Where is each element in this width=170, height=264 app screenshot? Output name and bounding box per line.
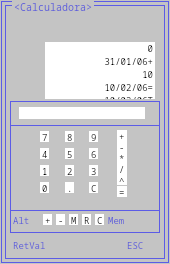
button[interactable]: 1 (40, 165, 49, 176)
button[interactable]: M (69, 214, 78, 225)
staticText: 5 (67, 148, 73, 159)
button[interactable]: 6 (89, 148, 98, 159)
button[interactable]: RetVal (13, 239, 46, 251)
button[interactable]: 4 (40, 148, 49, 159)
button[interactable]: Mem (108, 214, 125, 226)
staticText: 10/02/06= (45, 81, 153, 93)
staticText: Mem (108, 214, 125, 226)
staticText: 10/02/06T (45, 94, 153, 99)
button[interactable]: 0 (45, 42, 155, 99)
staticText: 9 (91, 131, 97, 142)
button[interactable]: <Calculadora> (12, 0, 94, 14)
staticText: ESC (127, 239, 144, 251)
staticText: * (119, 152, 125, 163)
button[interactable]: C (95, 214, 104, 225)
staticText: + (119, 130, 125, 141)
button[interactable]: 8 (65, 131, 74, 142)
button[interactable]: . (65, 182, 74, 193)
button[interactable]: + (117, 130, 127, 141)
button[interactable]: - (56, 214, 65, 225)
staticText: 3 (91, 165, 97, 176)
button[interactable]: - (117, 141, 127, 152)
button[interactable]: R (82, 214, 91, 225)
button[interactable]: * (117, 152, 127, 163)
button[interactable]: 9 (89, 131, 98, 142)
staticText: R (84, 214, 90, 225)
staticText: 6 (91, 148, 97, 159)
staticText: 4 (42, 148, 48, 159)
button[interactable]: 5 (65, 148, 74, 159)
staticText: 2 (67, 165, 73, 176)
staticText: Alt (13, 214, 30, 226)
staticText: 8 (67, 131, 73, 142)
staticText: RetVal (13, 239, 46, 251)
button[interactable]: 3 (89, 165, 98, 176)
button[interactable]: 7 (40, 131, 49, 142)
staticText: + (45, 214, 51, 225)
staticText: = (119, 186, 125, 197)
staticText: - (58, 214, 64, 225)
staticText: 7 (42, 131, 48, 142)
staticText: <Calculadora> (14, 0, 92, 14)
staticText: C (97, 214, 103, 225)
button[interactable]: + (43, 214, 52, 225)
staticText: 31/01/06+ (45, 55, 153, 67)
button[interactable]: ^ (117, 174, 127, 185)
button[interactable]: / (117, 163, 127, 174)
staticText: 1 (42, 165, 48, 176)
staticText: - (119, 141, 125, 152)
staticText: . (67, 182, 73, 193)
staticText: 0 (42, 182, 48, 193)
button[interactable]: 2 (65, 165, 74, 176)
staticText: 0 (45, 42, 153, 54)
button[interactable]: C (89, 182, 98, 193)
button[interactable]: = (117, 186, 127, 197)
staticText: ^ (119, 174, 125, 185)
button[interactable]: ESC (127, 239, 144, 251)
staticText: C (91, 182, 97, 193)
staticText: / (119, 163, 125, 174)
button[interactable]: 0 (40, 182, 49, 193)
staticText: M (71, 214, 77, 225)
button[interactable]: Alt (13, 214, 30, 226)
staticText: 10 (45, 68, 153, 80)
